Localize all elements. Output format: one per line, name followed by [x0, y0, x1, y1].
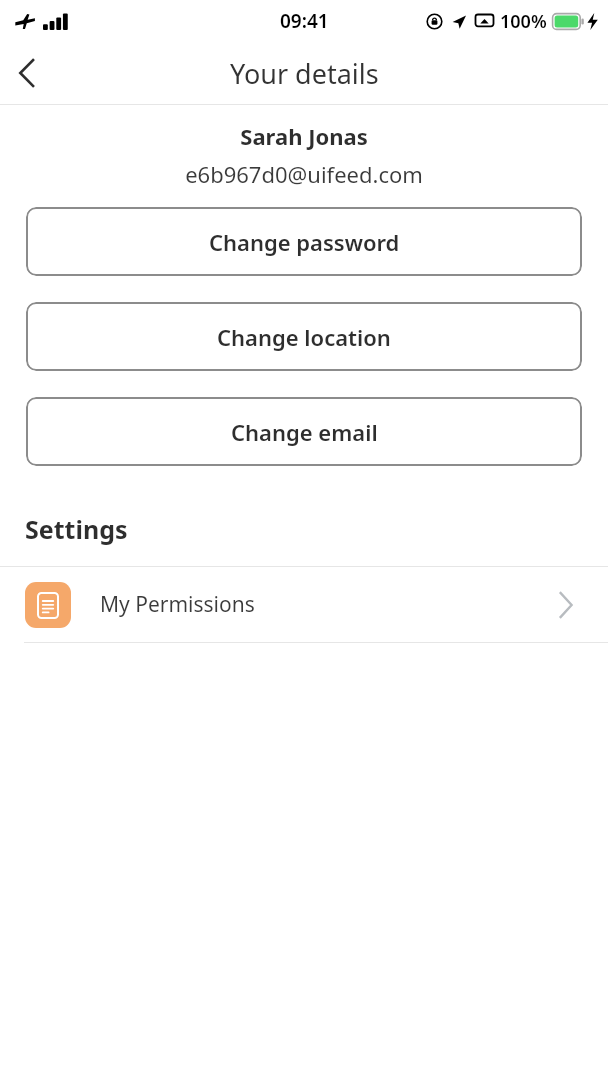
staticText: 100%: [500, 9, 547, 34]
button[interactable]: Change email: [26, 397, 582, 466]
staticText: 09:41: [280, 8, 329, 34]
staticText: My Permissions: [100, 590, 542, 619]
staticText: Change email: [231, 417, 378, 447]
staticText: Sarah Jonas: [240, 121, 368, 151]
button[interactable]: Back: [0, 46, 54, 100]
button[interactable]: My Permissions: [0, 567, 608, 642]
staticText: Your details: [230, 55, 379, 92]
button[interactable]: Change location: [26, 302, 582, 371]
staticText: Change password: [209, 227, 400, 257]
staticText: Change location: [217, 322, 391, 352]
button[interactable]: Change password: [26, 207, 582, 276]
staticText: Settings: [25, 512, 128, 546]
staticText: e6b967d0@uifeed.com: [185, 159, 423, 189]
